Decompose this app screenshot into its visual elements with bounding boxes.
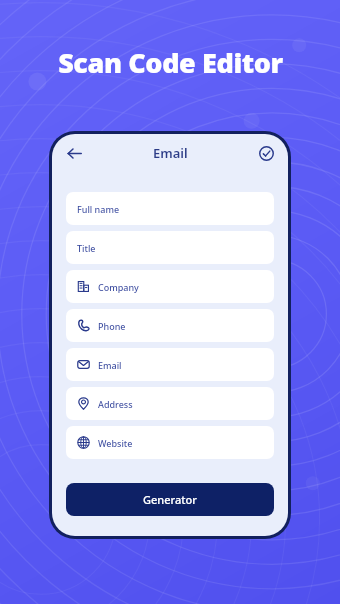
staticText: Generator	[143, 492, 197, 507]
button[interactable]: Generator	[66, 483, 274, 516]
button[interactable]: Phone	[66, 309, 274, 342]
button[interactable]: Address	[66, 387, 274, 420]
staticText: Email	[153, 144, 188, 162]
button[interactable]: Title	[66, 231, 274, 264]
staticText: Address	[98, 398, 133, 410]
button[interactable]: Full name	[66, 192, 274, 225]
button[interactable]: Back	[62, 141, 86, 165]
button[interactable]: Email	[66, 348, 274, 381]
staticText: Phone	[98, 320, 126, 332]
staticText: Website	[98, 437, 133, 449]
staticText: Title	[77, 242, 96, 254]
button[interactable]: Website	[66, 426, 274, 459]
staticText: Company	[98, 281, 139, 293]
staticText: Scan Code Editor	[58, 44, 283, 81]
staticText: Email	[98, 359, 122, 371]
staticText: Full name	[77, 203, 120, 215]
button[interactable]: Company	[66, 270, 274, 303]
button[interactable]: Confirm	[254, 141, 278, 165]
